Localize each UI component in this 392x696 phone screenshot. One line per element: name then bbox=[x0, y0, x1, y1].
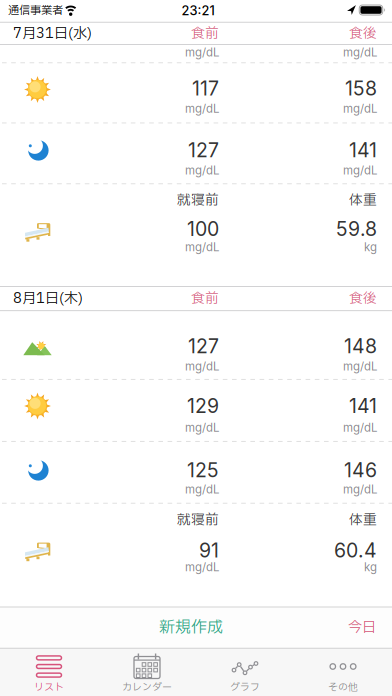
button[interactable]: カレンダー bbox=[98, 648, 196, 696]
button[interactable]: mg/dL bbox=[0, 45, 392, 63]
staticText: 158 bbox=[345, 76, 377, 100]
staticText: 通信事業者 bbox=[8, 2, 63, 19]
button[interactable]: 今日 bbox=[296, 607, 376, 648]
staticText: mg/dL bbox=[185, 560, 219, 574]
staticText: 就寝前 bbox=[177, 510, 219, 530]
button[interactable]: 117 bbox=[0, 63, 392, 123]
button[interactable]: 125 bbox=[0, 441, 392, 503]
staticText: 148 bbox=[344, 334, 377, 358]
staticText: 141 bbox=[349, 394, 377, 418]
staticText: 食前 bbox=[191, 23, 219, 44]
staticText: mg/dL bbox=[185, 45, 219, 59]
staticText: mg/dL bbox=[343, 421, 377, 435]
staticText: mg/dL bbox=[185, 102, 219, 116]
staticText: mg/dL bbox=[185, 482, 219, 496]
staticText: mg/dL bbox=[343, 45, 377, 59]
staticText: kg bbox=[364, 560, 377, 574]
button[interactable]: 129 bbox=[0, 379, 392, 441]
staticText: 7月31日(水) bbox=[13, 23, 92, 44]
staticText: 食後 bbox=[349, 288, 377, 309]
button[interactable]: 127 bbox=[0, 123, 392, 184]
button[interactable]: 就寝前 bbox=[0, 503, 392, 607]
staticText: mg/dL bbox=[343, 163, 377, 177]
staticText: グラフ bbox=[230, 680, 260, 695]
staticText: リスト bbox=[34, 680, 64, 695]
staticText: 100 bbox=[187, 217, 219, 241]
staticText: 117 bbox=[192, 76, 219, 100]
staticText: 食後 bbox=[349, 23, 377, 44]
staticText: 146 bbox=[344, 458, 377, 482]
staticText: mg/dL bbox=[185, 240, 219, 254]
button[interactable]: 127 bbox=[0, 311, 392, 379]
button[interactable]: グラフ bbox=[196, 648, 294, 696]
staticText: 141 bbox=[349, 138, 377, 162]
staticText: mg/dL bbox=[185, 421, 219, 435]
staticText: mg/dL bbox=[343, 102, 377, 116]
staticText: 体重 bbox=[349, 190, 377, 211]
staticText: mg/dL bbox=[343, 482, 377, 496]
staticText: 23:21 bbox=[181, 3, 214, 18]
staticText: mg/dL bbox=[343, 359, 377, 373]
staticText: 今日 bbox=[348, 617, 376, 638]
staticText: 食前 bbox=[191, 288, 219, 309]
staticText: 60.4 bbox=[334, 539, 377, 562]
button[interactable]: 新規作成 bbox=[131, 607, 251, 648]
staticText: 体重 bbox=[349, 510, 377, 530]
staticText: mg/dL bbox=[185, 163, 219, 177]
staticText: 125 bbox=[187, 458, 219, 482]
button[interactable]: 就寝前 bbox=[0, 184, 392, 286]
staticText: 新規作成 bbox=[159, 615, 223, 639]
staticText: 8月1日(木) bbox=[13, 288, 83, 309]
staticText: その他 bbox=[328, 680, 358, 695]
staticText: カレンダー bbox=[122, 680, 172, 695]
staticText: kg bbox=[364, 240, 377, 254]
button[interactable]: リスト bbox=[0, 648, 98, 696]
staticText: 127 bbox=[188, 334, 219, 358]
staticText: 59.8 bbox=[336, 217, 377, 241]
staticText: 127 bbox=[188, 138, 219, 162]
staticText: 就寝前 bbox=[177, 190, 219, 211]
button[interactable]: その他 bbox=[294, 648, 392, 696]
staticText: mg/dL bbox=[185, 359, 219, 373]
staticText: 129 bbox=[187, 394, 219, 418]
staticText: 91 bbox=[199, 539, 219, 562]
